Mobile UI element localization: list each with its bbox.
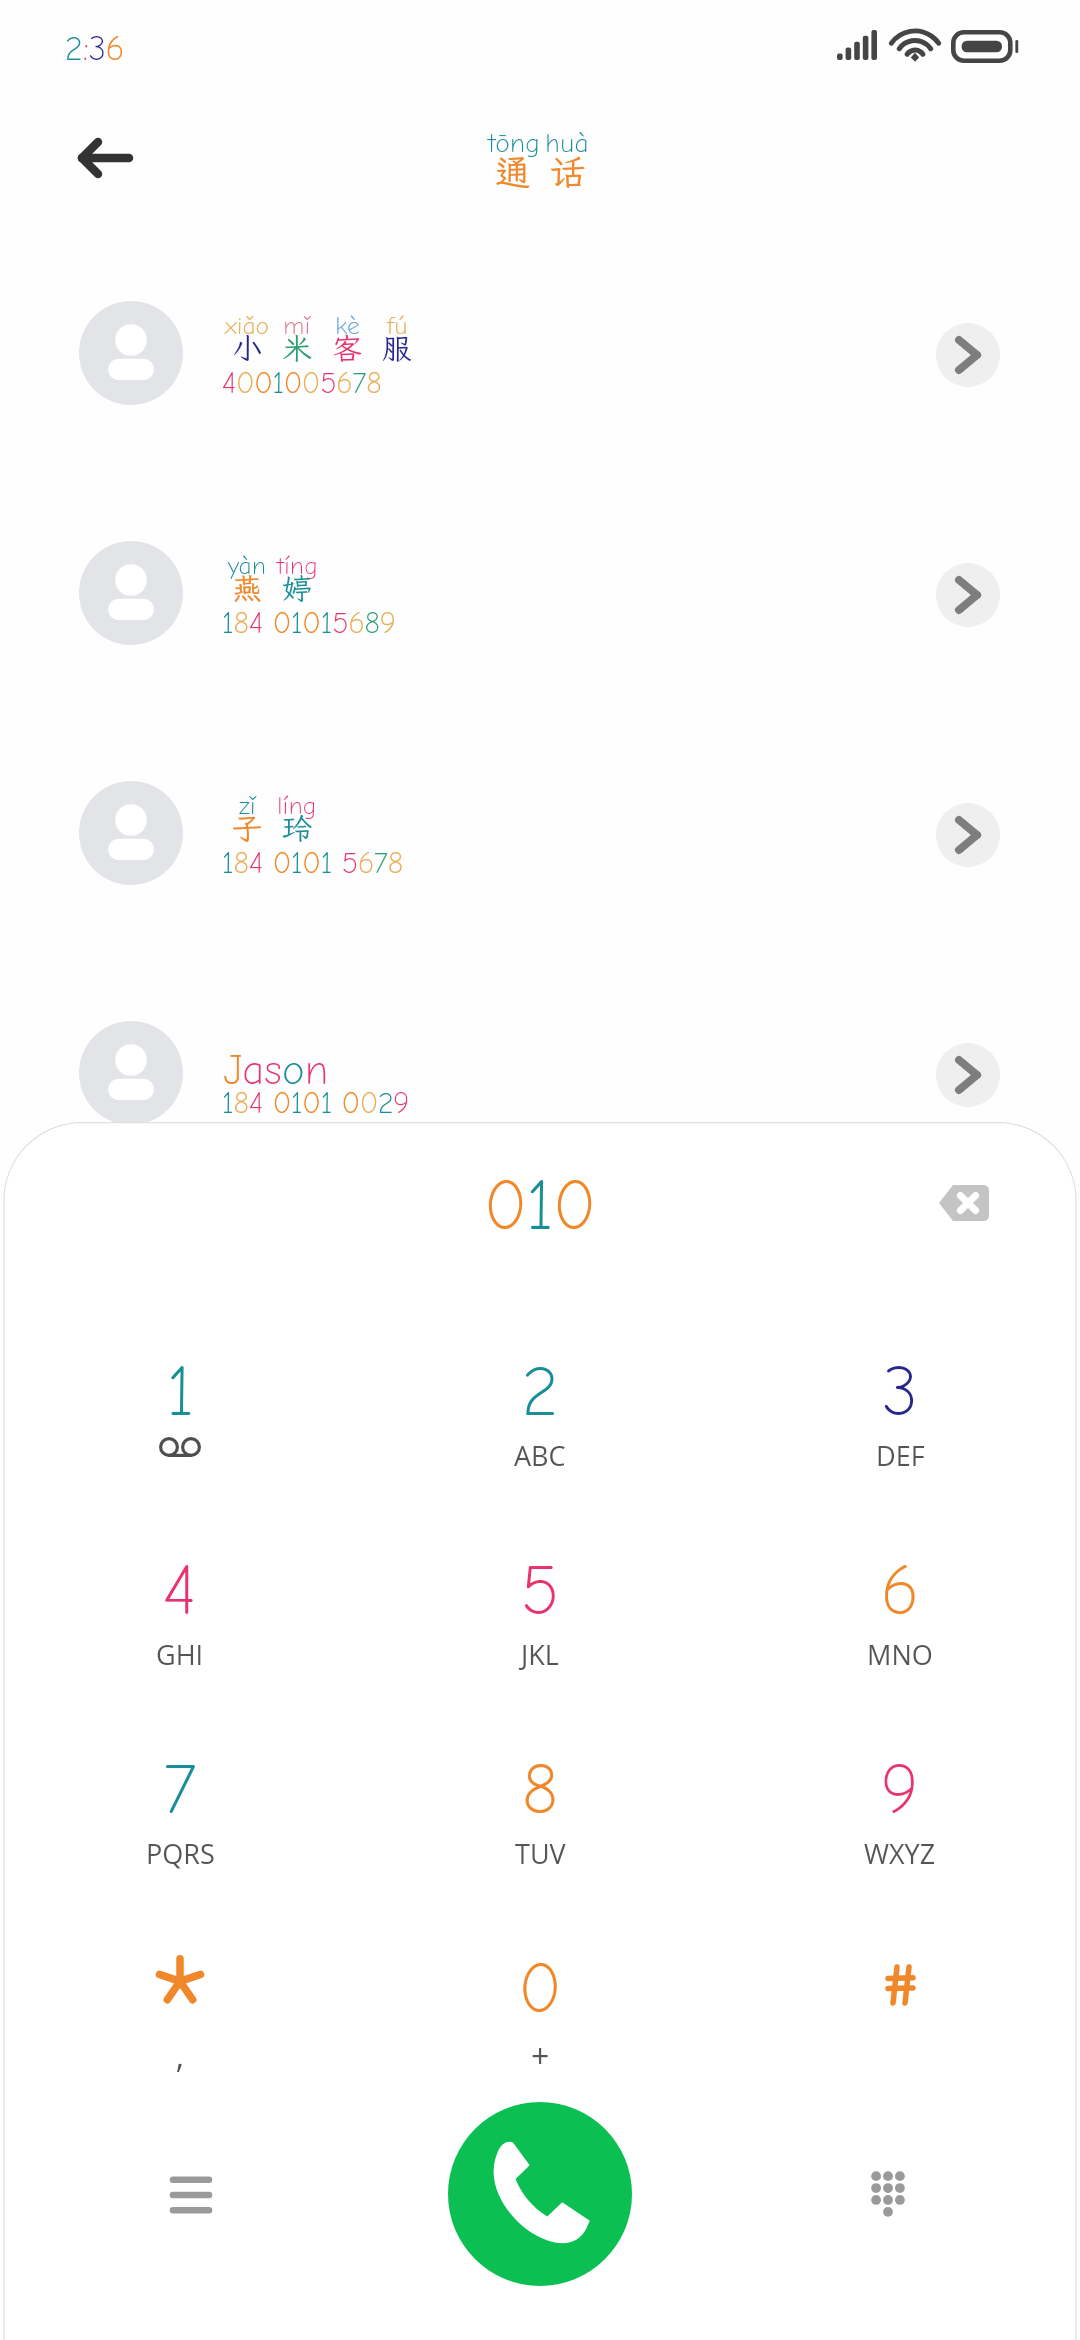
staticText: JKL [521,1636,559,1673]
button[interactable]: yàn [0,474,1080,714]
staticText: GHI [156,1636,204,1673]
staticText: 米 [282,328,312,368]
button[interactable]: 5 [420,1455,660,1654]
staticText: tōng [488,128,538,159]
button[interactable]: Contact details [936,323,1000,387]
staticText: 1 [167,1352,194,1433]
staticText: + [531,2034,550,2078]
staticText: 184 0101 5678 [222,846,404,881]
staticText: Jason [224,1046,329,1094]
staticText: TUV [515,1835,566,1872]
staticText: 客 [332,328,362,368]
button[interactable]: 4 [60,1455,300,1654]
staticText: WXYZ [864,1835,936,1872]
staticText: 4 [163,1551,197,1632]
staticText: 燕 [232,568,262,608]
staticText: 0 [519,1949,562,2030]
staticText: 8 [522,1750,558,1831]
staticText: 6 [881,1551,919,1632]
staticText: 通 [495,148,532,195]
staticText: 7 [164,1750,197,1831]
staticText: PQRS [146,1835,215,1872]
button[interactable]: xiǎo [0,234,1080,474]
staticText: 4001005678 [222,366,382,401]
staticText: 玲 [282,808,312,848]
staticText: 9 [881,1750,919,1831]
button[interactable]: 1 [60,1256,300,1455]
staticText: DEF [876,1437,925,1474]
button[interactable]: Menu [147,2150,235,2238]
staticText: huà [545,128,589,159]
staticText: yàn [228,551,266,580]
staticText: zǐ [239,791,256,820]
staticText: 小 [232,328,262,368]
button[interactable]: zǐ [0,714,1080,954]
button[interactable]: Dialpad [844,2150,932,2238]
button[interactable]: Contact details [936,563,1000,627]
staticText: 婷 [282,568,312,608]
button[interactable]: 3 [780,1256,1020,1455]
staticText: líng [277,791,317,820]
staticText: 010 [484,1166,596,1247]
staticText: 2 [522,1352,558,1433]
staticText: mǐ [283,311,311,340]
staticText: 子 [232,808,262,848]
staticText: 5 [521,1551,559,1632]
button[interactable]: , [60,1853,300,2052]
button[interactable]: 0 [420,1853,660,2052]
staticText: , [176,2034,184,2078]
button[interactable]: Delete [930,1178,989,1228]
staticText: 184 01015689 [222,606,396,641]
button[interactable]: Back [46,118,136,194]
staticText: 2:36 [65,29,124,68]
staticText: 话 [549,148,586,195]
staticText: fú [387,311,408,340]
staticText: 服 [382,328,412,368]
staticText: ABC [514,1437,566,1474]
staticText: 3 [883,1352,918,1433]
button[interactable]: Jason [0,954,1080,1194]
button[interactable]: 9 [780,1654,1020,1853]
staticText: tíng [277,551,318,580]
button[interactable]: Call [448,2102,632,2286]
button[interactable]: 2 [420,1256,660,1455]
staticText: xiǎo [225,311,270,340]
button[interactable]: 6 [780,1455,1020,1654]
staticText: MNO [867,1636,933,1673]
button[interactable]: Contact details [936,803,1000,867]
button[interactable]: 8 [420,1654,660,1853]
staticText: 184 0101 0029 [222,1086,410,1121]
staticText: kè [335,311,360,340]
button[interactable]: 7 [60,1654,300,1853]
button[interactable]: Contact details [936,1043,1000,1107]
button[interactable] [780,1853,1020,2052]
